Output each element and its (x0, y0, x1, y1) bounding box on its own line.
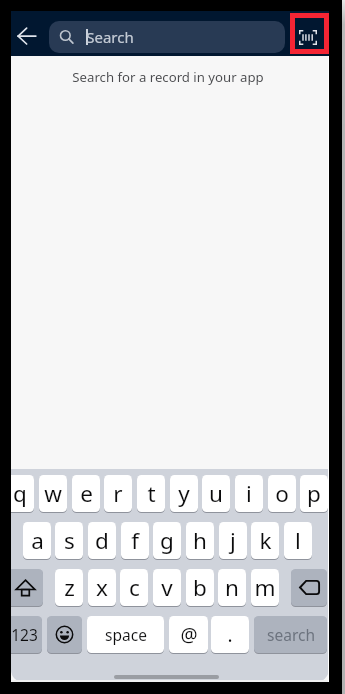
button[interactable]: Backspace (291, 569, 327, 606)
staticText: v (161, 572, 173, 603)
button[interactable]: c (120, 569, 148, 606)
button[interactable]: e (72, 475, 100, 512)
button[interactable]: @ (169, 616, 208, 653)
staticText: Search for a record in your app (72, 68, 264, 86)
button[interactable]: k (251, 522, 279, 559)
staticText: s (64, 525, 75, 556)
button[interactable]: w (39, 475, 67, 512)
button[interactable]: s (55, 522, 83, 559)
button[interactable]: j (219, 522, 247, 559)
button[interactable]: search (254, 616, 327, 653)
button[interactable]: v (153, 569, 181, 606)
button[interactable]: Scan barcode (290, 13, 329, 54)
button[interactable]: q (11, 475, 34, 512)
button[interactable]: i (235, 475, 263, 512)
staticText: i (246, 478, 252, 509)
staticText: q (13, 478, 27, 509)
staticText: d (95, 525, 109, 556)
staticText: space (105, 624, 147, 645)
button[interactable]: b (186, 569, 214, 606)
button[interactable]: z (55, 569, 83, 606)
staticText: l (295, 525, 301, 556)
button[interactable]: d (88, 522, 116, 559)
staticText: o (275, 478, 289, 509)
button[interactable]: u (202, 475, 230, 512)
staticText: e (80, 478, 93, 509)
button[interactable]: space (87, 616, 164, 653)
button[interactable]: x (88, 569, 116, 606)
staticText: c (129, 572, 140, 603)
button[interactable]: n (218, 569, 246, 606)
button[interactable]: r (104, 475, 132, 512)
staticText: 123 (11, 624, 38, 645)
staticText: Search (86, 27, 134, 47)
staticText: search (267, 624, 315, 645)
staticText: g (160, 525, 174, 556)
button[interactable]: f (121, 522, 149, 559)
button[interactable]: l (284, 522, 312, 559)
staticText: a (31, 525, 44, 556)
staticText: x (96, 572, 108, 603)
button[interactable]: a (23, 522, 51, 559)
staticText: r (113, 478, 123, 509)
button[interactable]: 123 (11, 616, 42, 653)
staticText: . (227, 622, 233, 648)
staticText: t (147, 478, 156, 509)
button[interactable]: g (153, 522, 181, 559)
staticText: u (209, 478, 223, 509)
button[interactable]: Search (49, 21, 285, 53)
button[interactable]: . (211, 616, 249, 653)
button[interactable]: y (170, 475, 198, 512)
button[interactable]: t (137, 475, 165, 512)
staticText: p (307, 478, 321, 509)
button[interactable]: h (186, 522, 214, 559)
staticText: @ (180, 622, 198, 648)
staticText: y (178, 478, 190, 509)
staticText: b (193, 572, 207, 603)
staticText: f (131, 525, 139, 556)
button[interactable]: p (300, 475, 328, 512)
staticText: z (64, 572, 75, 603)
staticText: j (230, 525, 236, 556)
staticText: m (254, 572, 276, 603)
button[interactable]: Emoji keyboard (47, 616, 82, 653)
button[interactable]: o (268, 475, 296, 512)
button[interactable]: Shift (11, 569, 43, 606)
staticText: k (259, 525, 272, 556)
button[interactable]: m (251, 569, 279, 606)
staticText: w (44, 478, 62, 509)
staticText: h (193, 525, 207, 556)
button[interactable]: Back (11, 20, 43, 52)
staticText: n (225, 572, 239, 603)
